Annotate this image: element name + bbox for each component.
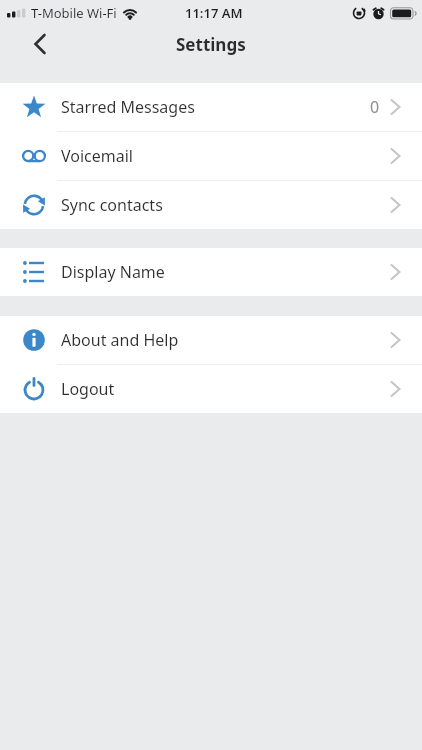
- button[interactable]: Voicemail: [0, 132, 422, 180]
- staticText: Starred Messages: [61, 96, 370, 118]
- staticText: Logout: [61, 378, 390, 400]
- staticText: 0: [370, 96, 380, 118]
- button[interactable]: About and Help: [0, 316, 422, 364]
- button[interactable]: Display Name: [0, 248, 422, 296]
- button[interactable]: Logout: [0, 365, 422, 413]
- button[interactable]: Sync contacts: [0, 181, 422, 229]
- staticText: Sync contacts: [61, 194, 390, 216]
- button[interactable]: [22, 26, 58, 62]
- staticText: Voicemail: [61, 145, 390, 167]
- staticText: Settings: [176, 33, 246, 56]
- staticText: 11:17 AM: [185, 4, 243, 22]
- staticText: Display Name: [61, 261, 390, 283]
- staticText: T-Mobile Wi-Fi: [31, 4, 117, 22]
- staticText: About and Help: [61, 329, 390, 351]
- button[interactable]: Starred Messages: [0, 83, 422, 131]
